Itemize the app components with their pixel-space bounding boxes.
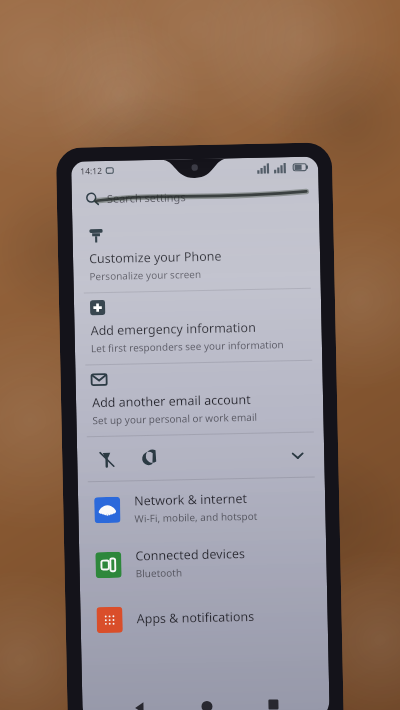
button[interactable]: Connected devices	[79, 532, 327, 593]
staticText: Personalize your screen	[89, 267, 202, 283]
staticText: Search settings	[107, 189, 186, 206]
staticText: Wi-Fi, mobile, and hotspot	[134, 509, 258, 525]
button[interactable]: Expand	[284, 442, 310, 468]
staticText: Connected devices	[135, 545, 245, 564]
button[interactable]: Flashlight	[93, 446, 119, 472]
staticText: Add another email account	[92, 391, 251, 411]
staticText: Add emergency information	[90, 319, 257, 339]
button[interactable]: Network & internet	[78, 477, 326, 538]
staticText: 14:12	[80, 165, 102, 177]
staticText: Network & internet	[134, 490, 247, 509]
button[interactable]: Back	[124, 692, 155, 710]
staticText: Set up your personal or work email	[92, 410, 258, 427]
button[interactable]: Recent apps	[258, 689, 289, 710]
staticText: Bluetooth	[135, 565, 183, 580]
staticText: Customize your Phone	[89, 247, 222, 267]
button[interactable]: Apps & notifications	[80, 587, 328, 648]
staticText: Let first responders see your informatio…	[91, 337, 284, 355]
button[interactable]: Search settings	[71, 176, 319, 216]
staticText: Apps & notifications	[136, 608, 255, 627]
button[interactable]: Home	[191, 691, 222, 710]
button[interactable]: Add another email account	[75, 360, 324, 437]
button[interactable]: Customize your Phone	[72, 216, 321, 293]
button[interactable]: Do not disturb	[135, 445, 161, 471]
button[interactable]: Add emergency information	[74, 288, 322, 365]
